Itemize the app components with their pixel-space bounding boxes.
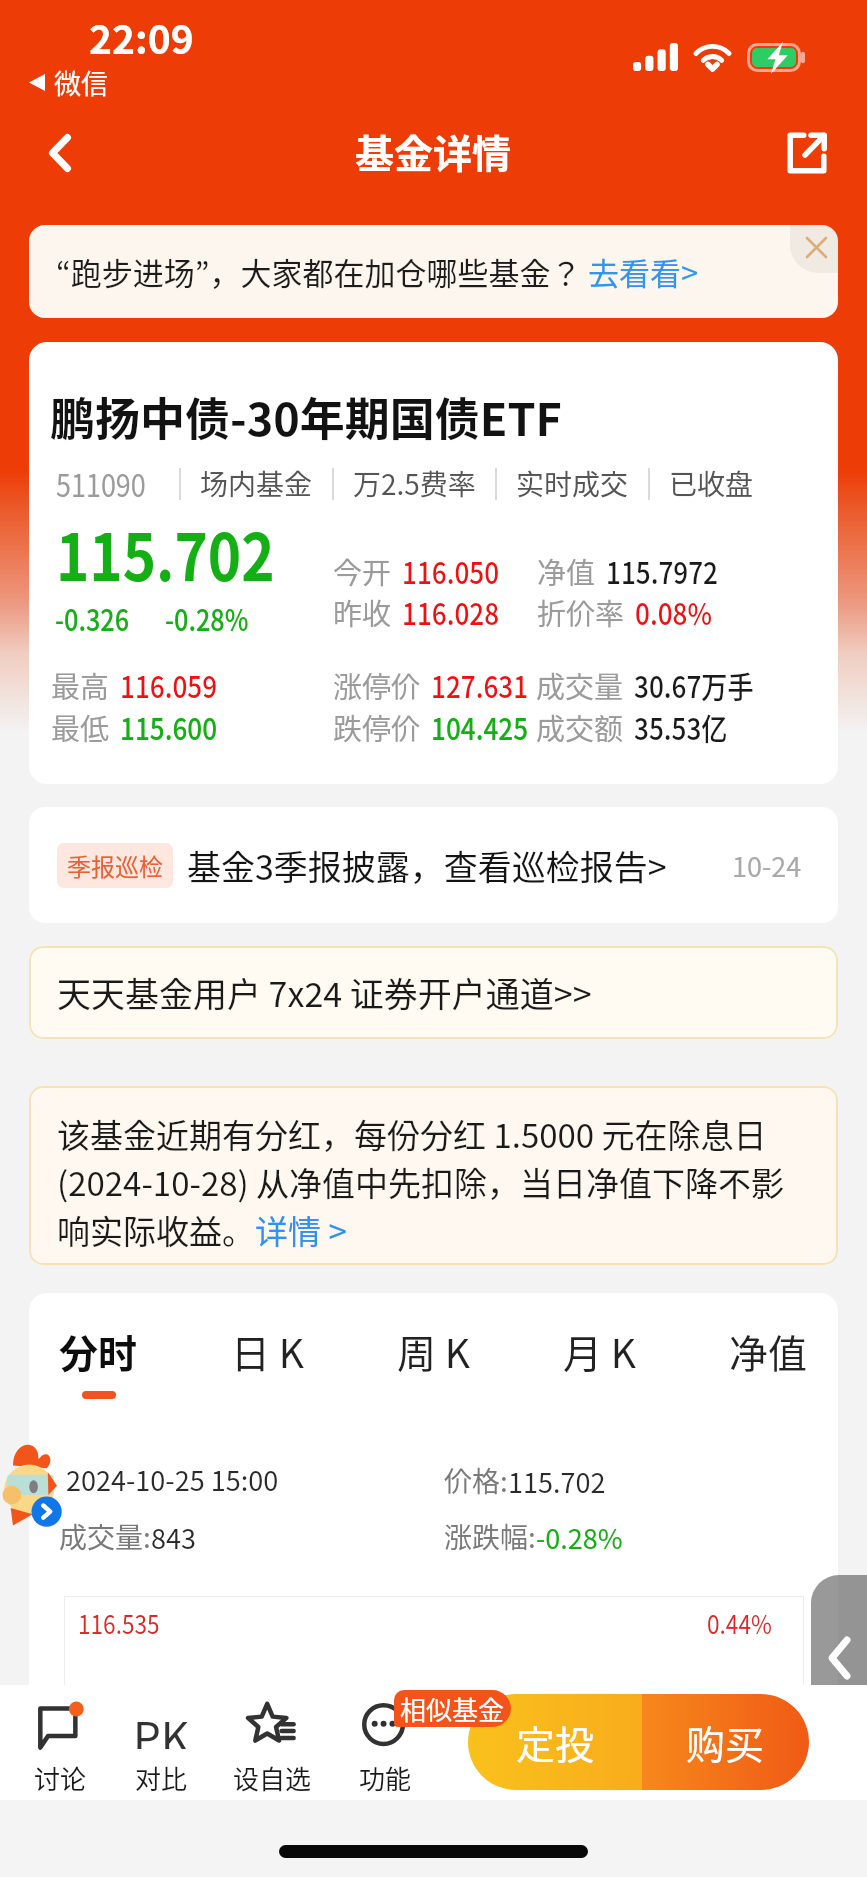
staticText: 511090 xyxy=(56,461,146,506)
staticText: 周 K xyxy=(397,1323,470,1379)
staticText: 成交量 xyxy=(536,664,624,706)
staticText: 万2.5费率 xyxy=(353,463,476,504)
staticText: 设自选 xyxy=(233,1759,312,1797)
staticText: (2024-10-28) 从净值中先扣除，当日净值下降不影 xyxy=(57,1158,785,1206)
staticText: 季报巡检 xyxy=(67,848,163,883)
staticText: 116.050 xyxy=(402,549,499,592)
button[interactable]: 相似基金 xyxy=(394,1690,511,1727)
staticText: 分时 xyxy=(59,1323,138,1379)
staticText: 成交额 xyxy=(536,706,624,748)
staticText: 2024-10-25 15:00 xyxy=(66,1460,279,1499)
staticText: PK xyxy=(133,1703,190,1749)
staticText: 0.44% xyxy=(707,1604,772,1642)
button[interactable]: 微信 xyxy=(29,63,108,102)
button[interactable]: PK xyxy=(111,1685,211,1800)
staticText: 今开 xyxy=(333,550,392,592)
staticText: 相似基金 xyxy=(400,1690,505,1727)
staticText: 最低 xyxy=(51,706,110,748)
button[interactable]: 功能 xyxy=(335,1685,435,1800)
button[interactable]: Close xyxy=(790,225,838,273)
button[interactable]: 设自选 xyxy=(222,1685,322,1800)
staticText: 响实际收益。 xyxy=(57,1206,255,1254)
staticText: 116.028 xyxy=(402,590,499,633)
staticText: 微信 xyxy=(54,63,108,102)
button[interactable]: 天天基金用户 7x24 证券开户通道>> xyxy=(29,946,838,1039)
button[interactable]: 分时 xyxy=(59,1323,138,1399)
staticText: 127.631 xyxy=(431,663,528,706)
staticText: 基金详情 xyxy=(355,123,512,179)
staticText: 昨收 xyxy=(333,591,392,633)
staticText: 116.535 xyxy=(78,1604,160,1642)
staticText: 115.600 xyxy=(120,705,217,748)
button[interactable]: 详情 > xyxy=(255,1206,347,1254)
staticText: 折价率 xyxy=(537,591,625,633)
button[interactable]: 日 K xyxy=(231,1323,304,1399)
staticText: 涨停价 xyxy=(333,664,421,706)
staticText: 功能 xyxy=(359,1759,412,1797)
staticText: 10-24 xyxy=(732,846,802,885)
staticText: 月 K xyxy=(563,1323,636,1379)
staticText: -0.28% xyxy=(165,597,248,639)
staticText: 115.702 xyxy=(508,1462,606,1501)
staticText: 购买 xyxy=(686,1714,765,1770)
button[interactable]: Expand panel xyxy=(811,1575,867,1740)
staticText: “跑步进场”，大家都在加仓哪些基金？ xyxy=(56,249,582,294)
staticText: 115.702 xyxy=(56,506,275,600)
staticText: 22:09 xyxy=(89,9,194,65)
staticText: 净值 xyxy=(729,1323,808,1379)
button[interactable]: 月 K xyxy=(563,1323,636,1399)
staticText: 跌停价 xyxy=(333,706,421,748)
staticText: 净值 xyxy=(537,550,596,592)
staticText: 115.7972 xyxy=(606,549,718,592)
staticText: -0.326 xyxy=(55,597,130,639)
staticText: 35.53亿 xyxy=(634,705,728,748)
button[interactable]: 讨论 xyxy=(10,1685,110,1800)
button[interactable]: Assistant xyxy=(6,1438,64,1530)
staticText: 实时成交 xyxy=(516,463,629,504)
staticText: 最高 xyxy=(51,664,110,706)
staticText: 该基金近期有分红，每份分红 1.5000 元在除息日 xyxy=(57,1110,767,1158)
button[interactable]: “跑步进场”，大家都在加仓哪些基金？ xyxy=(29,225,838,318)
staticText: 天天基金用户 7x24 证券开户通道>> xyxy=(57,968,592,1017)
staticText: 讨论 xyxy=(34,1759,87,1797)
staticText: 场内基金 xyxy=(200,463,313,504)
staticText: 0.08% xyxy=(635,590,712,633)
staticText: 104.425 xyxy=(431,705,528,748)
button[interactable]: Back xyxy=(28,121,92,185)
staticText: -0.28% xyxy=(536,1518,623,1557)
staticText: 鹏扬中债-30年期国债ETF xyxy=(50,384,562,449)
staticText: 对比 xyxy=(135,1759,188,1797)
staticText: 843 xyxy=(151,1518,196,1557)
staticText: 涨跌幅: xyxy=(444,1516,536,1557)
staticText: 30.67万手 xyxy=(634,663,754,706)
button[interactable]: 季报巡检 xyxy=(29,807,838,923)
button[interactable]: 净值 xyxy=(729,1323,808,1399)
staticText: 定投 xyxy=(516,1714,595,1770)
staticText: 成交量: xyxy=(59,1516,151,1557)
button[interactable]: 定投 xyxy=(468,1694,642,1790)
staticText: 116.059 xyxy=(120,663,217,706)
staticText: 基金3季报披露，查看巡检报告> xyxy=(187,841,667,890)
staticText: 日 K xyxy=(231,1323,304,1379)
staticText: 价格: xyxy=(444,1460,508,1501)
staticText: 已收盘 xyxy=(669,463,754,504)
staticText: 去看看> xyxy=(588,249,699,294)
button[interactable]: 购买 xyxy=(642,1694,809,1790)
button[interactable]: Share xyxy=(775,121,839,185)
button[interactable]: 周 K xyxy=(397,1323,470,1399)
